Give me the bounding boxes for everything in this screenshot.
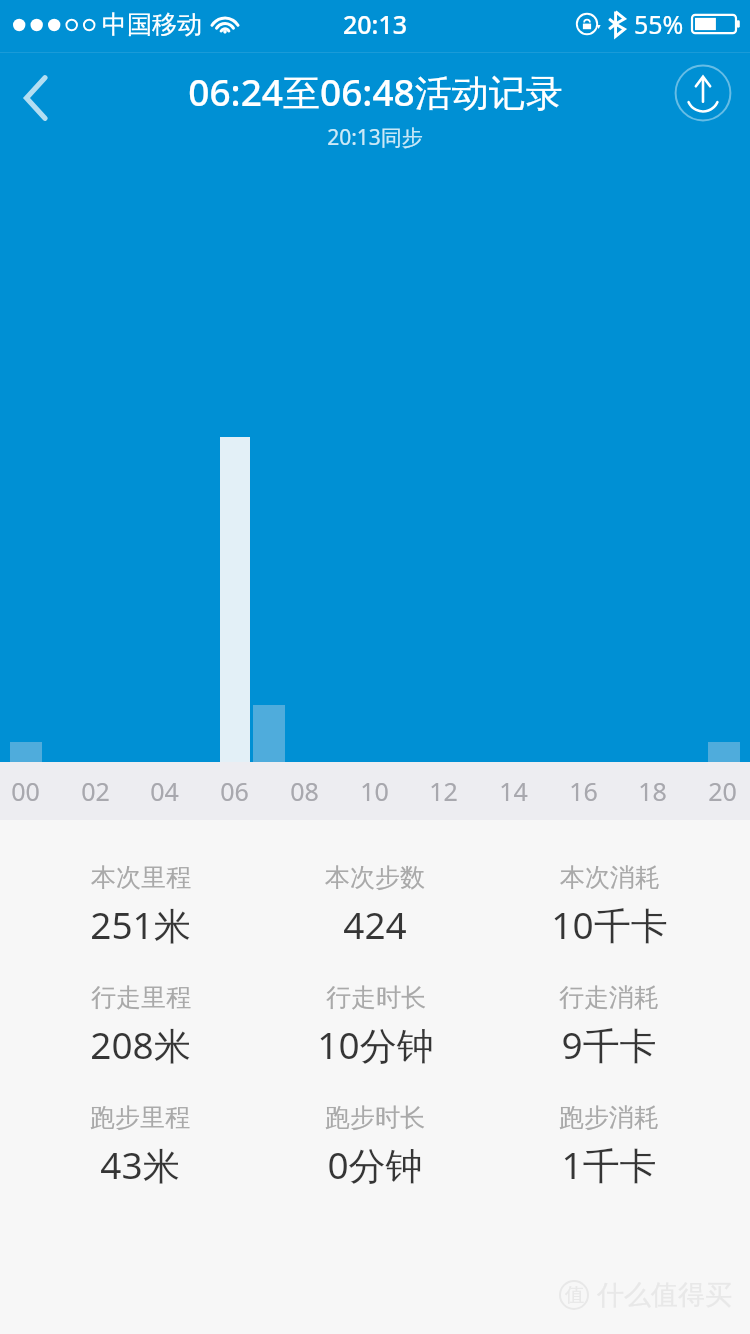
- staticText: 本次消耗: [560, 862, 660, 893]
- staticText: 跑步里程: [90, 1102, 190, 1133]
- staticText: 20:13同步: [327, 123, 423, 152]
- button[interactable]: 跑步时长: [258, 1102, 492, 1190]
- button[interactable]: Back: [4, 54, 68, 142]
- button[interactable]: 本次里程: [23, 862, 257, 950]
- button[interactable]: 本次步数: [258, 862, 492, 950]
- staticText: 12: [429, 774, 458, 808]
- staticText: 06:24至06:48活动记录: [188, 66, 563, 117]
- staticText: 本次里程: [91, 862, 191, 893]
- button[interactable]: 本次消耗: [492, 862, 726, 950]
- staticText: 02: [81, 774, 110, 808]
- staticText: 10: [360, 774, 389, 808]
- button[interactable]: Share: [674, 64, 732, 122]
- staticText: 什么值得买: [597, 1278, 732, 1312]
- button[interactable]: 行走消耗: [492, 982, 726, 1070]
- staticText: 424: [343, 899, 407, 949]
- staticText: 00: [11, 774, 40, 808]
- staticText: 16: [569, 774, 598, 808]
- staticText: 10分钟: [317, 1019, 434, 1070]
- button[interactable]: 跑步消耗: [492, 1102, 726, 1190]
- staticText: 9千卡: [561, 1019, 657, 1070]
- staticText: 20:13: [343, 7, 408, 41]
- staticText: 18: [638, 774, 667, 808]
- staticText: 跑步时长: [325, 1102, 425, 1133]
- staticText: 行走里程: [91, 982, 191, 1013]
- staticText: 55%: [634, 7, 684, 41]
- staticText: 43米: [100, 1139, 180, 1190]
- staticText: 208米: [90, 1019, 191, 1070]
- staticText: 行走消耗: [559, 982, 659, 1013]
- staticText: 1千卡: [561, 1139, 657, 1190]
- button[interactable]: 行走里程: [23, 982, 257, 1070]
- staticText: 14: [499, 774, 528, 808]
- staticText: 跑步消耗: [559, 1102, 659, 1133]
- staticText: 04: [150, 774, 179, 808]
- staticText: 值: [565, 1283, 584, 1307]
- staticText: 08: [290, 774, 319, 808]
- staticText: 中国移动: [102, 9, 202, 40]
- staticText: 本次步数: [325, 862, 425, 893]
- staticText: 0分钟: [327, 1139, 423, 1190]
- staticText: 20: [708, 774, 737, 808]
- button[interactable]: 跑步里程: [23, 1102, 257, 1190]
- staticText: 行走时长: [326, 982, 426, 1013]
- staticText: 10千卡: [551, 899, 668, 950]
- button[interactable]: 行走时长: [258, 982, 492, 1070]
- staticText: 251米: [90, 899, 191, 950]
- staticText: 06: [220, 774, 249, 808]
